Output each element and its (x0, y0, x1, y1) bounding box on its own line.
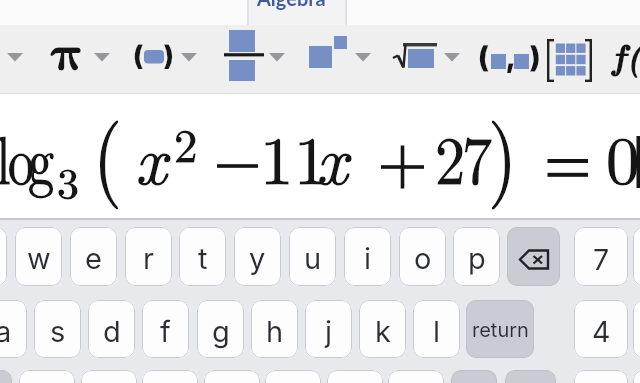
button[interactable] (44, 25, 116, 94)
button[interactable] (600, 25, 640, 94)
button[interactable]: k (359, 300, 406, 358)
staticText: p (468, 241, 486, 276)
button[interactable]: g (197, 300, 244, 358)
button[interactable] (0, 370, 12, 383)
button[interactable] (265, 370, 321, 383)
button[interactable]: d (88, 300, 135, 358)
staticText: 4 (592, 314, 611, 348)
staticText: j (325, 314, 333, 349)
button[interactable]: l (413, 300, 460, 358)
staticText: 7 (593, 242, 610, 276)
button[interactable] (633, 227, 640, 286)
staticText: r (143, 241, 154, 276)
button[interactable]: h (251, 300, 298, 358)
staticText: d (103, 314, 121, 349)
button[interactable] (574, 370, 628, 383)
button[interactable]: Algebra (248, 0, 346, 25)
button[interactable]: return (466, 300, 534, 358)
button[interactable] (633, 300, 640, 358)
button[interactable] (0, 227, 7, 286)
button[interactable] (327, 370, 383, 383)
button[interactable]: a (0, 300, 27, 358)
button[interactable]: 7 (574, 227, 628, 286)
button[interactable]: j (305, 300, 352, 358)
staticText: i (364, 241, 372, 276)
button[interactable]: 4 (574, 300, 628, 358)
staticText: f (160, 314, 171, 349)
staticText: y (249, 241, 266, 276)
button[interactable] (214, 25, 292, 94)
button[interactable]: r (125, 227, 172, 286)
button[interactable] (81, 370, 137, 383)
button[interactable] (204, 370, 260, 383)
button[interactable] (142, 370, 198, 383)
button[interactable] (386, 25, 466, 94)
staticText: h (266, 314, 284, 349)
button[interactable]: t (179, 227, 226, 286)
button[interactable]: s (34, 300, 81, 358)
button[interactable] (19, 370, 75, 383)
button[interactable]: w (15, 227, 62, 286)
staticText: g (212, 314, 230, 349)
button[interactable] (538, 25, 596, 94)
button[interactable] (0, 25, 32, 94)
button[interactable] (507, 227, 560, 286)
button[interactable] (300, 25, 378, 94)
button[interactable]: y (234, 227, 281, 286)
staticText: return (472, 318, 529, 342)
staticText: k (375, 314, 391, 349)
button[interactable]: f (142, 300, 189, 358)
button[interactable] (505, 370, 556, 383)
button[interactable] (124, 25, 204, 94)
button[interactable]: p (453, 227, 500, 286)
button[interactable]: e (70, 227, 117, 286)
button[interactable] (633, 370, 640, 383)
button[interactable]: u (289, 227, 336, 286)
button[interactable] (472, 25, 542, 94)
staticText: e (85, 241, 102, 276)
button[interactable] (451, 370, 497, 383)
staticText: t (198, 241, 208, 276)
staticText: o (414, 241, 432, 276)
staticText: l (433, 314, 441, 349)
staticText: s (50, 314, 66, 349)
staticText: Algebra (257, 0, 326, 10)
staticText: w (27, 241, 51, 276)
button[interactable]: i (344, 227, 391, 286)
button[interactable] (388, 370, 444, 383)
staticText: u (304, 241, 322, 276)
staticText: a (0, 314, 12, 349)
button[interactable]: o (399, 227, 446, 286)
